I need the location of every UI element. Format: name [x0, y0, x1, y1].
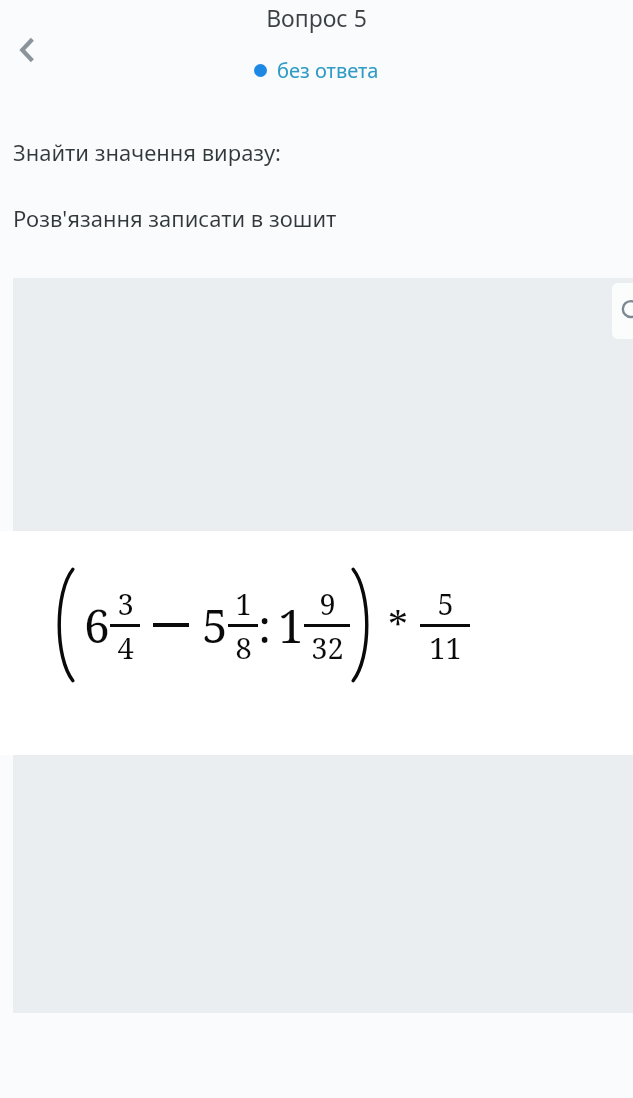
staticText: 4 [117, 628, 134, 667]
staticText: 9 [319, 584, 336, 623]
staticText: Розв'язання записати в зошит [13, 203, 337, 233]
staticText: : [258, 594, 272, 657]
staticText: 32 [311, 628, 344, 667]
button[interactable]: без ответа [254, 57, 379, 84]
staticText: 1 [235, 584, 252, 623]
staticText: без ответа [277, 57, 379, 84]
staticText: 1 [278, 594, 304, 657]
staticText: 8 [235, 628, 252, 667]
staticText: 6 [84, 594, 110, 657]
button[interactable]: Увеличить [612, 283, 633, 339]
staticText: 11 [429, 628, 462, 667]
staticText: 5 [202, 594, 228, 657]
staticText: Вопрос 5 [266, 2, 367, 33]
button[interactable]: Назад [2, 25, 52, 75]
staticText: * [388, 598, 408, 652]
staticText: Знайти значення виразу: [13, 137, 281, 167]
staticText: 5 [437, 584, 454, 623]
staticText: 3 [117, 584, 134, 623]
